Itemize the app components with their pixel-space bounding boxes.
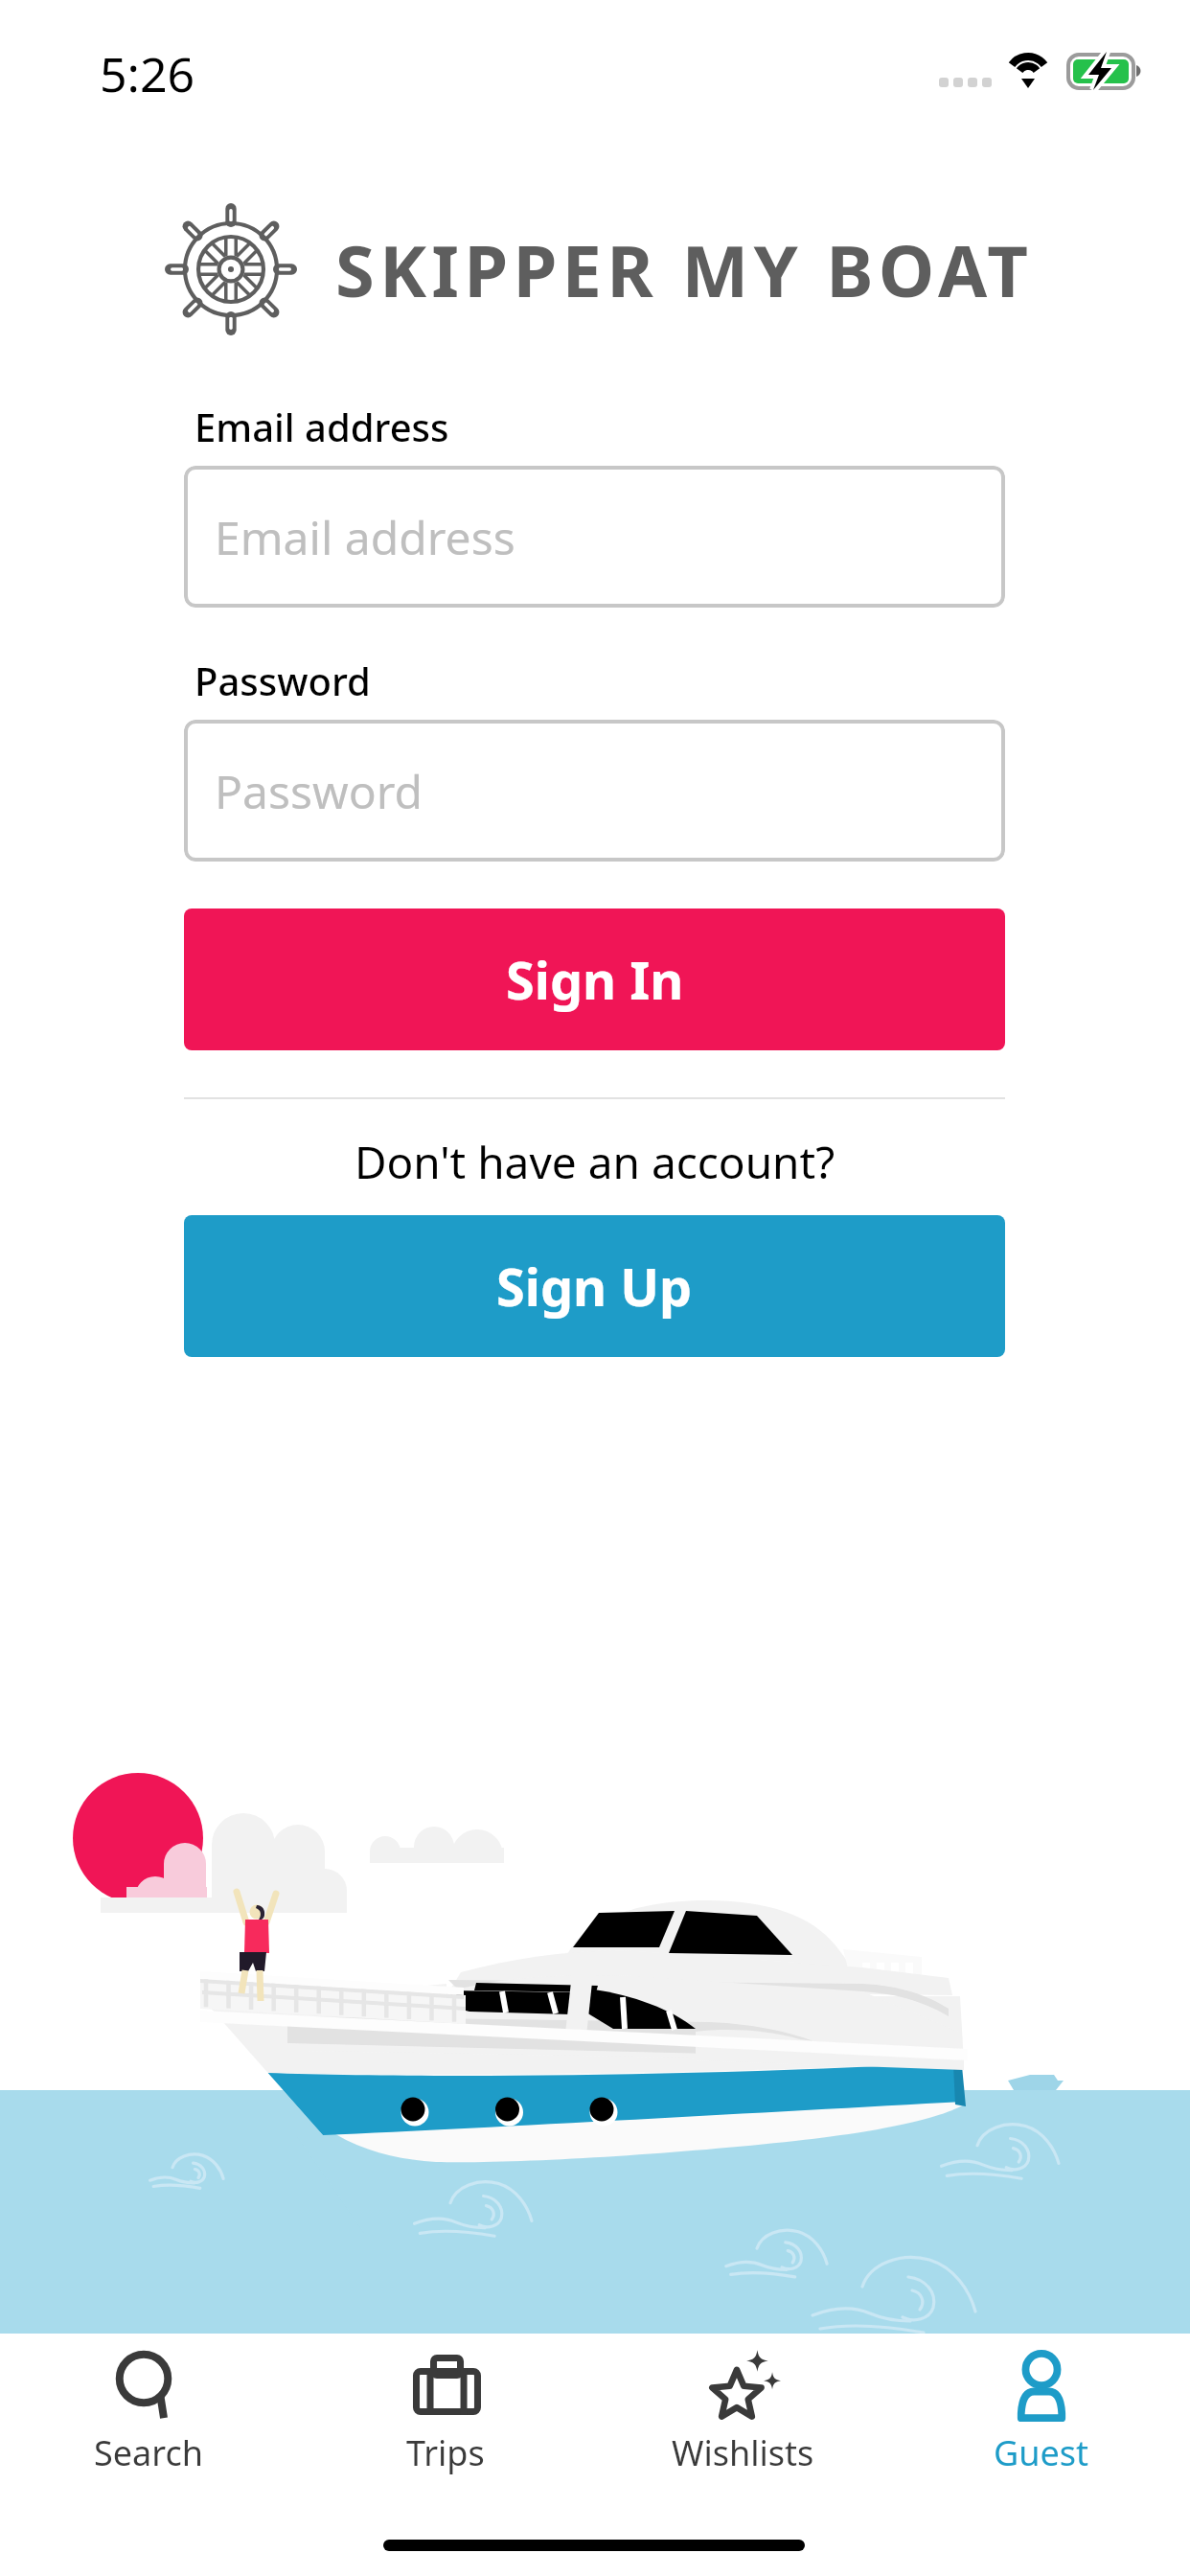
staticText: Search: [94, 2429, 203, 2476]
staticText: Don't have an account?: [184, 1132, 1005, 1192]
staticText: Email address: [215, 506, 515, 568]
staticText: Sign Up: [496, 1251, 693, 1322]
staticText: Guest: [994, 2429, 1089, 2476]
button[interactable]: Sign In: [184, 908, 1005, 1050]
button[interactable]: Trips: [297, 2334, 594, 2476]
button[interactable]: Password: [184, 720, 1005, 862]
staticText: Password: [195, 655, 371, 706]
staticText: Email address: [195, 401, 449, 452]
staticText: 5:26: [100, 41, 195, 106]
button[interactable]: Email address: [184, 466, 1005, 608]
staticText: Sign In: [506, 944, 684, 1015]
button[interactable]: Guest: [892, 2334, 1190, 2476]
button[interactable]: Sign Up: [184, 1215, 1005, 1357]
staticText: Wishlists: [672, 2429, 814, 2476]
button[interactable]: Wishlists: [594, 2334, 892, 2476]
staticText: Trips: [406, 2429, 485, 2476]
staticText: Password: [215, 760, 423, 822]
staticText: SKIPPER MY BOAT: [335, 221, 1034, 318]
button[interactable]: Search: [0, 2334, 297, 2476]
